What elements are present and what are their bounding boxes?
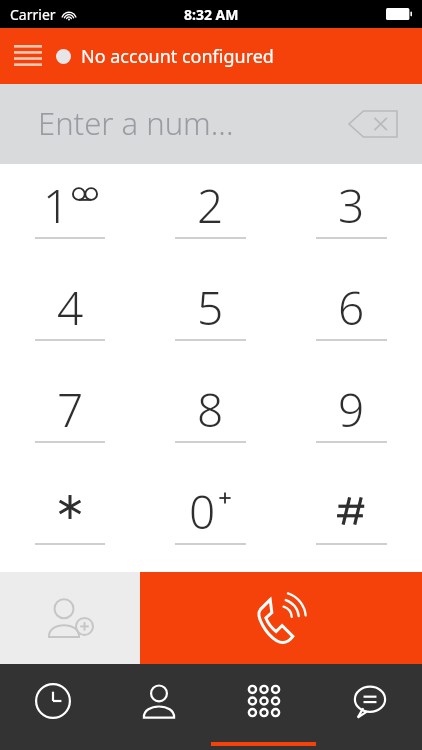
button[interactable] (281, 470, 422, 572)
staticText: 6 (338, 276, 365, 339)
button[interactable]: Menu (0, 28, 56, 84)
staticText: 1 (43, 174, 70, 237)
staticText: No account configured (81, 44, 274, 69)
button[interactable]: 2 (140, 164, 281, 266)
button[interactable]: Contacts (106, 664, 211, 750)
staticText: 9 (338, 378, 365, 441)
staticText: 5 (197, 276, 224, 339)
button[interactable] (0, 470, 140, 572)
button[interactable]: No account configured (56, 28, 422, 84)
staticText: Carrier (10, 5, 56, 24)
button[interactable]: 1 (0, 164, 140, 266)
button[interactable]: 6 (281, 266, 422, 368)
staticText: 8:32 AM (184, 5, 239, 24)
button[interactable]: 7 (0, 368, 140, 470)
staticText: 2 (197, 174, 224, 237)
staticText: 0 (189, 480, 216, 543)
button[interactable]: Recents (0, 664, 105, 750)
staticText: 7 (57, 378, 84, 441)
staticText: 8 (197, 378, 224, 441)
button[interactable]: Call (140, 572, 422, 664)
button[interactable]: 9 (281, 368, 422, 470)
button[interactable]: 8 (140, 368, 281, 470)
button[interactable]: 3 (281, 164, 422, 266)
button[interactable]: Messages (317, 664, 422, 750)
button[interactable]: Keypad (211, 664, 316, 750)
staticText: 3 (338, 174, 365, 237)
button[interactable]: 5 (140, 266, 281, 368)
button[interactable]: Backspace (344, 102, 402, 146)
button[interactable]: Enter a num... (38, 102, 234, 144)
staticText: 4 (57, 276, 84, 339)
button[interactable]: 4 (0, 266, 140, 368)
button[interactable]: Add contact (0, 572, 140, 664)
button[interactable]: 0 (140, 470, 281, 572)
